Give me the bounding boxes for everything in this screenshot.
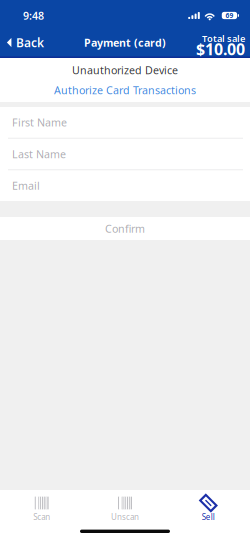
- staticText: Confirm: [105, 221, 145, 236]
- button[interactable]: Scan: [0, 494, 83, 525]
- button[interactable]: Authorize Card Transactions: [0, 80, 250, 100]
- staticText: Sell: [202, 512, 215, 522]
- staticText: 69: [225, 11, 233, 20]
- staticText: Unscan: [111, 512, 139, 522]
- staticText: Total sale: [202, 32, 245, 45]
- staticText: 9:48: [23, 8, 44, 23]
- staticText: First Name: [12, 115, 67, 129]
- button[interactable]: Sell: [167, 494, 250, 525]
- staticText: Last Name: [12, 147, 66, 161]
- staticText: Payment (card): [84, 35, 166, 50]
- staticText: Authorize Card Transactions: [54, 83, 196, 97]
- staticText: Scan: [33, 512, 50, 522]
- button[interactable]: Unscan: [83, 494, 167, 525]
- staticText: Unauthorized Device: [72, 63, 178, 77]
- staticText: $10.00: [196, 38, 245, 60]
- staticText: Back: [16, 34, 44, 50]
- staticText: Email: [12, 179, 40, 193]
- button[interactable]: Confirm: [0, 217, 250, 240]
- button[interactable]: Back: [0, 27, 52, 57]
